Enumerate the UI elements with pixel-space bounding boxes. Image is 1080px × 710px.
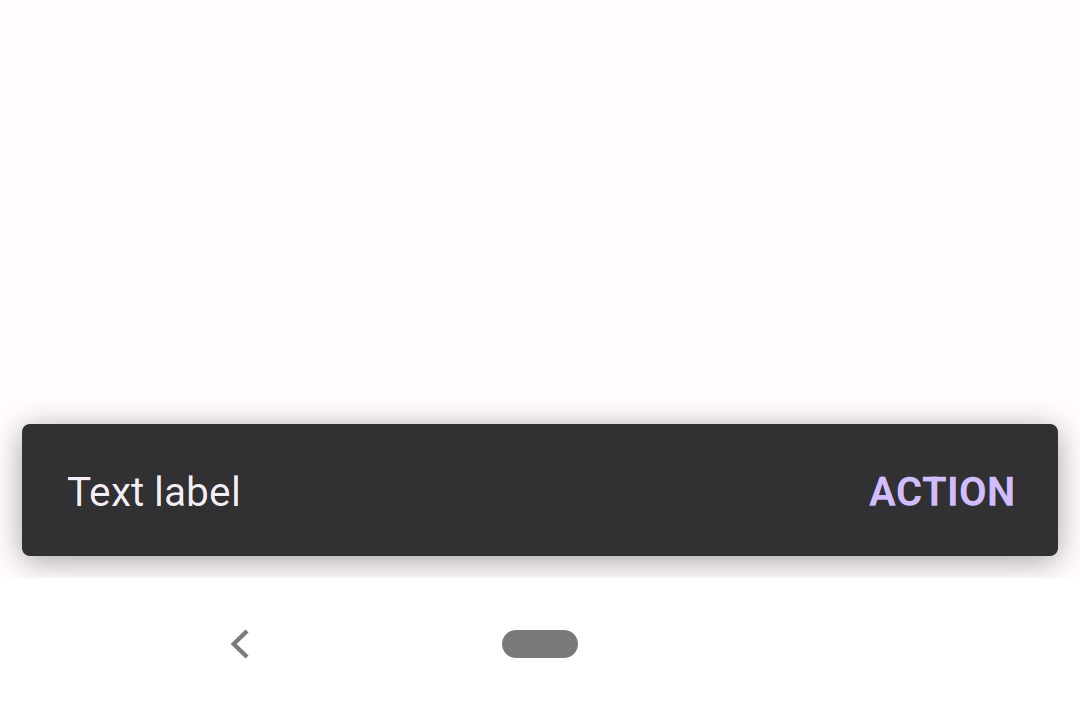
button[interactable]: Home	[410, 599, 670, 689]
button[interactable]: Back	[178, 599, 298, 689]
staticText: ACTION	[869, 469, 1015, 515]
staticText: Text label	[67, 468, 241, 516]
button[interactable]: ACTION	[857, 455, 1027, 529]
